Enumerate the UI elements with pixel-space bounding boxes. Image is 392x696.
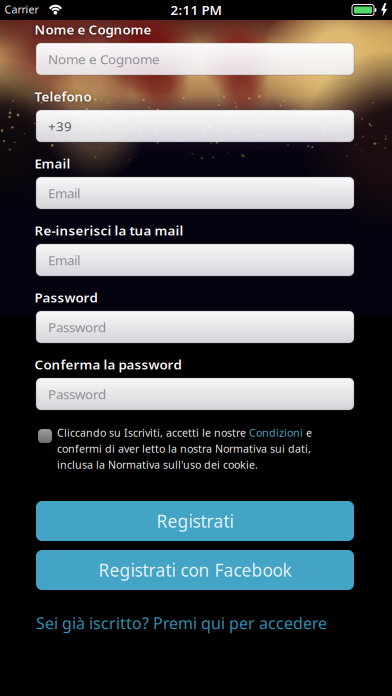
staticText: Telefono	[34, 87, 91, 105]
staticText: inclusa la Normativa sull'uso dei cookie…	[57, 457, 258, 472]
staticText: Email	[48, 184, 80, 202]
staticText: Password	[48, 385, 106, 403]
button[interactable]: Sei già iscritto? Premi qui per accedere	[36, 612, 327, 634]
staticText: Email	[48, 251, 80, 269]
staticText: Re-inserisci la tua mail	[34, 221, 183, 239]
button[interactable]: Registrati	[36, 501, 354, 541]
staticText: +39	[48, 117, 72, 135]
staticText: Email	[34, 154, 70, 172]
button[interactable]: Condizioni	[249, 425, 303, 440]
staticText: Password	[34, 288, 97, 306]
button[interactable]: Accetta le condizioni	[38, 429, 52, 443]
button[interactable]: Registrati con Facebook	[36, 550, 354, 590]
staticText: Registrati	[156, 509, 233, 532]
staticText: Password	[48, 318, 106, 336]
staticText: Cliccando su Iscriviti, accetti le nostr…	[57, 425, 249, 440]
staticText: 2:11 PM	[170, 1, 221, 19]
staticText: Nome e Cognome	[48, 50, 160, 68]
staticText: confermi di aver letto la nostra Normati…	[57, 441, 311, 456]
staticText: Carrier	[4, 2, 38, 17]
staticText: e	[303, 425, 312, 440]
staticText: Sei già iscritto? Premi qui per accedere	[36, 612, 327, 634]
staticText: Registrati con Facebook	[98, 558, 291, 581]
staticText: Nome e Cognome	[34, 20, 151, 38]
staticText: Condizioni	[249, 425, 303, 440]
staticText: Conferma la password	[34, 355, 181, 373]
